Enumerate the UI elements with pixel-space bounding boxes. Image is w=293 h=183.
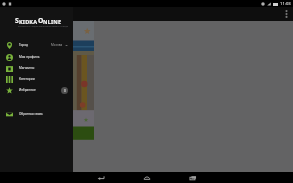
button[interactable]: Обратная связь <box>0 108 73 120</box>
staticText: NLINE <box>43 18 62 25</box>
button[interactable]: Категории <box>0 73 73 85</box>
staticText: S <box>15 16 19 25</box>
staticText: Магазины <box>19 66 35 70</box>
button[interactable]: Моя профиль <box>0 51 73 63</box>
staticText: Избранное <box>19 88 36 92</box>
staticText: O <box>38 16 44 25</box>
staticText: каталоги и скидки магазинов вашего город… <box>18 25 69 28</box>
staticText: KIDKA <box>19 18 38 25</box>
button[interactable]: Город <box>0 39 73 51</box>
staticText: Обратная связь <box>19 112 43 116</box>
staticText: Категории <box>19 77 35 81</box>
staticText: 11:03 <box>280 1 291 7</box>
button[interactable]: Recents <box>179 172 207 183</box>
button[interactable]: Магазины <box>0 62 73 74</box>
staticText: Город <box>19 43 28 47</box>
staticText: Моя профиль <box>19 55 40 59</box>
button[interactable]: Back <box>87 172 115 183</box>
button[interactable]: Home <box>133 172 161 183</box>
staticText: Москва <box>51 43 63 47</box>
button[interactable]: Избранное <box>0 84 73 96</box>
staticText: 0 <box>64 89 66 93</box>
button[interactable]: More options <box>282 8 290 20</box>
